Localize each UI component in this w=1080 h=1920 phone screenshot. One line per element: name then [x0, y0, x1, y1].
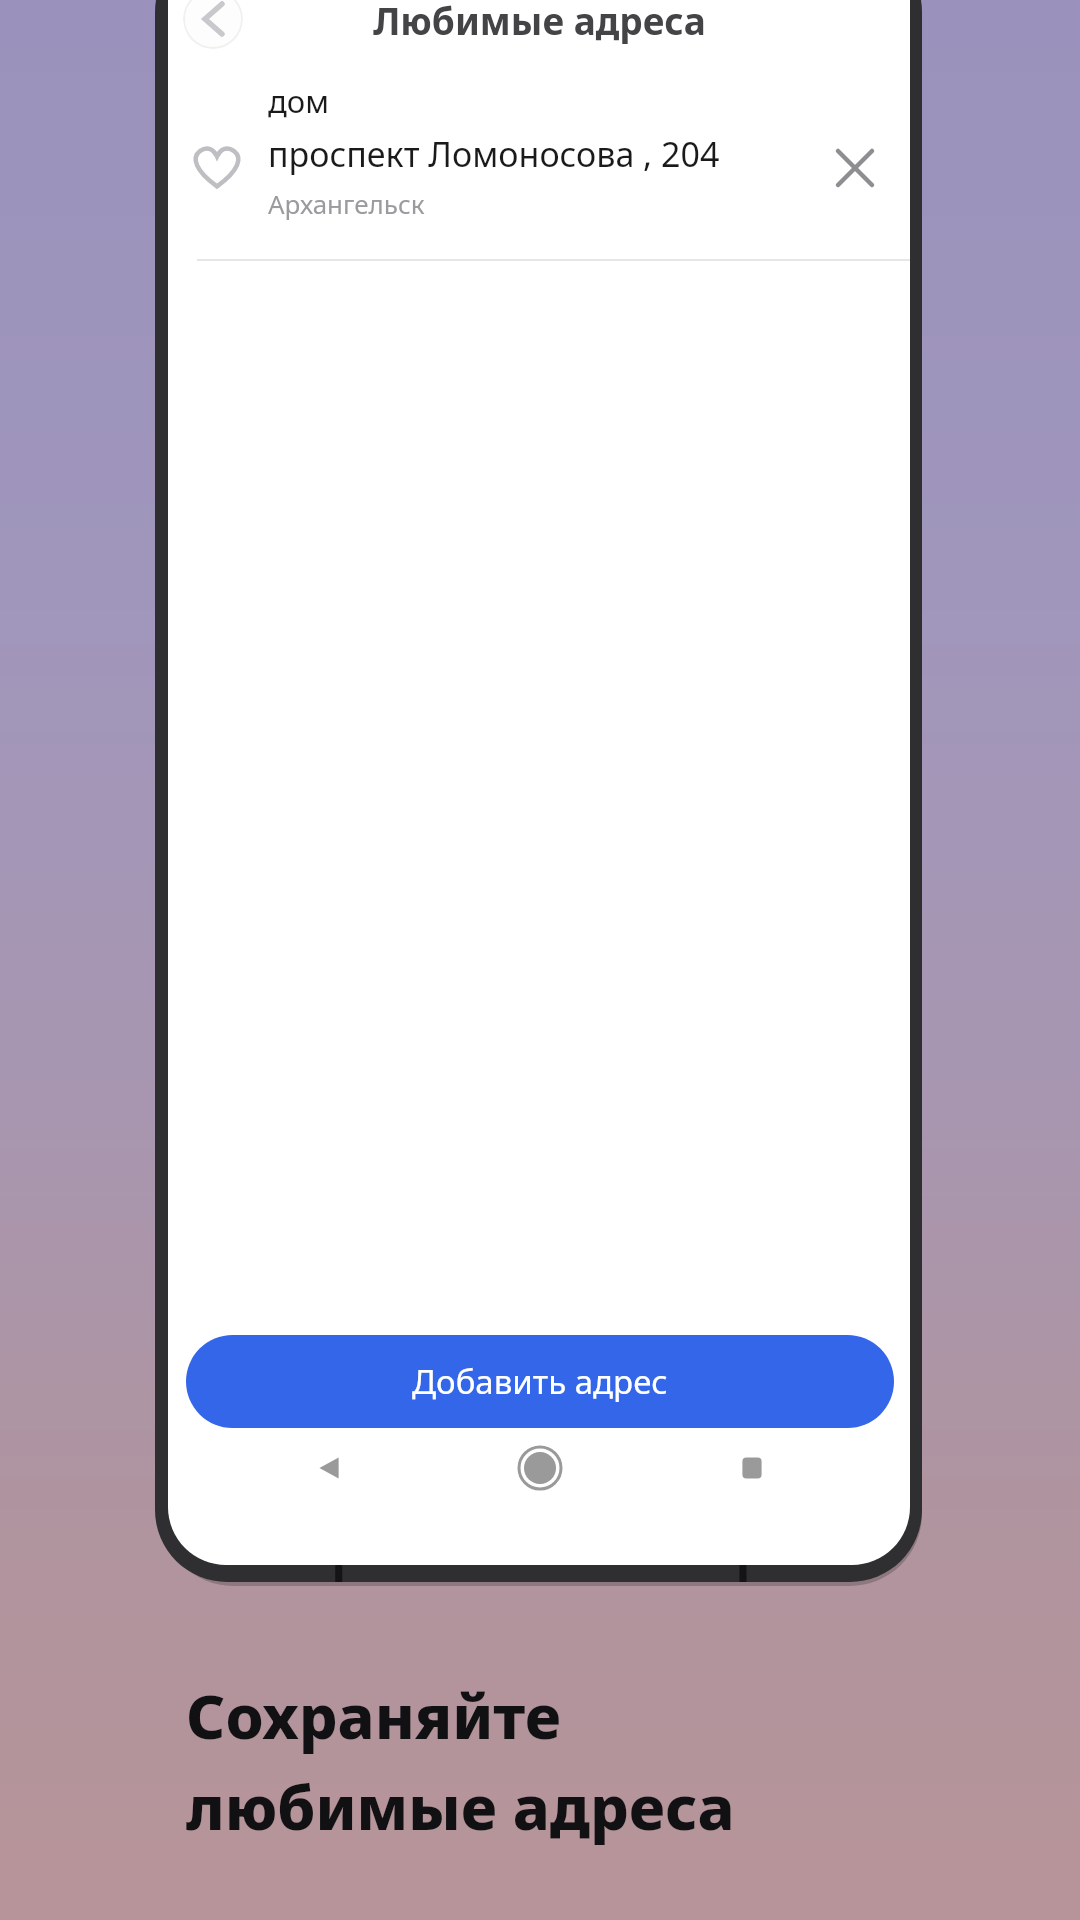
button[interactable]: Назад — [306, 1444, 354, 1492]
staticText: Сохраняйте — [186, 1674, 562, 1757]
button[interactable]: Добавить адрес — [186, 1335, 894, 1428]
button[interactable]: Избранное — [168, 68, 910, 260]
button[interactable]: Домой — [516, 1444, 564, 1492]
staticText: Архангельск — [268, 186, 425, 221]
staticText: любимые адреса — [186, 1765, 735, 1848]
staticText: дом — [268, 80, 330, 122]
staticText: проспект Ломоносова , 204 — [268, 131, 720, 177]
button[interactable]: Недавние — [728, 1444, 776, 1492]
staticText: Любимые адреса — [373, 0, 706, 45]
button[interactable]: Удалить адрес — [827, 140, 883, 196]
staticText: Добавить адрес — [412, 1359, 668, 1404]
button[interactable]: Назад — [183, 0, 243, 49]
button[interactable]: Избранное — [190, 140, 244, 194]
